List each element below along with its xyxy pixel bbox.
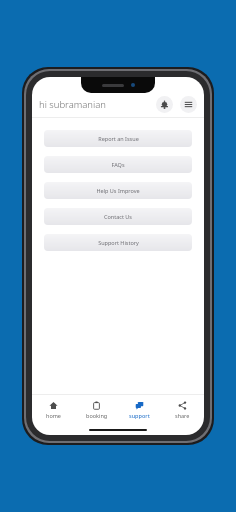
staticText: Help Us Improve [96, 187, 140, 194]
button[interactable]: Menu [180, 96, 197, 113]
staticText: FAQs [111, 161, 125, 168]
button[interactable]: home [32, 395, 75, 425]
button[interactable]: Support History [44, 234, 192, 251]
button[interactable]: Notifications [156, 96, 173, 113]
staticText: Report an Issue [98, 135, 139, 142]
staticText: share [175, 412, 190, 419]
staticText: home [46, 412, 61, 419]
staticText: Support History [98, 239, 139, 246]
button[interactable]: support [118, 395, 161, 425]
button[interactable]: Contact Us [44, 208, 192, 225]
button[interactable]: share [161, 395, 204, 425]
button[interactable]: booking [75, 395, 118, 425]
button[interactable]: Report an Issue [44, 130, 192, 147]
staticText: booking [86, 412, 108, 419]
button[interactable]: FAQs [44, 156, 192, 173]
staticText: hi subramanian [39, 98, 106, 111]
staticText: support [129, 412, 150, 419]
staticText: Contact Us [104, 213, 132, 220]
button[interactable]: Help Us Improve [44, 182, 192, 199]
